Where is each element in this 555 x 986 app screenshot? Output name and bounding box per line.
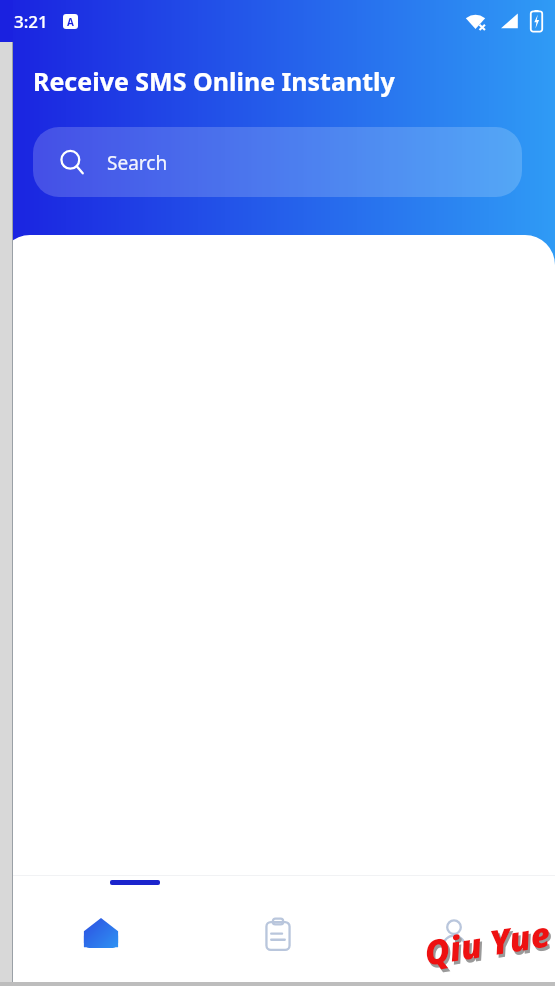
staticText: Qiu Yue xyxy=(421,910,554,976)
button[interactable]: Profile xyxy=(379,894,529,976)
staticText: Receive SMS Online Instantly xyxy=(33,64,395,98)
button[interactable]: Search xyxy=(33,127,522,197)
button[interactable]: Records xyxy=(203,894,353,976)
button[interactable]: Home xyxy=(26,894,176,976)
staticText: 3:21 xyxy=(14,10,48,33)
staticText: A xyxy=(67,15,74,29)
staticText: Qiu Yue xyxy=(423,913,555,979)
staticText: Search xyxy=(107,150,168,176)
